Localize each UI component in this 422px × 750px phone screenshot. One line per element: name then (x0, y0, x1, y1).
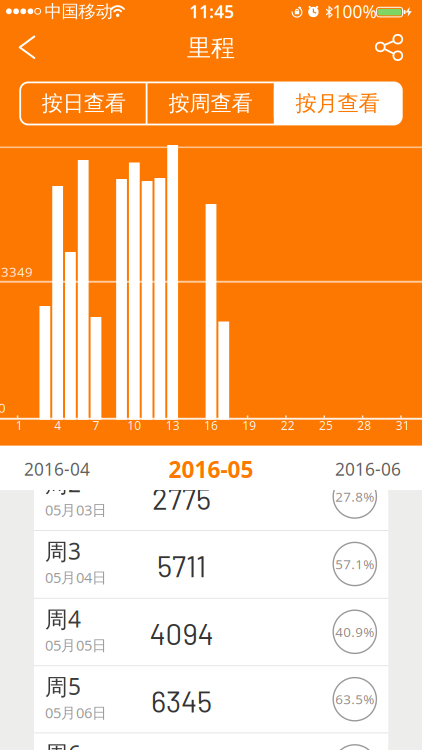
staticText: 中国移动 (44, 1, 112, 22)
staticText: 6345 (151, 683, 212, 718)
staticText: 05月04日 (45, 568, 107, 587)
staticText: 57.1% (335, 555, 374, 573)
button[interactable] (12, 31, 42, 65)
staticText: 11:45 (189, 0, 234, 23)
staticText: 16 (204, 417, 218, 433)
staticText: 周2 (45, 468, 81, 498)
staticText: 里程 (187, 33, 235, 63)
button[interactable]: 2016-06 (317, 448, 418, 490)
staticText: 63.5% (335, 690, 374, 708)
staticText: 05月05日 (45, 635, 107, 655)
staticText: 31 (396, 417, 410, 433)
staticText: 28 (357, 417, 371, 433)
staticText: 100% (332, 0, 376, 23)
staticText: 05月06日 (45, 703, 107, 722)
staticText: 19 (242, 417, 256, 433)
staticText: 4094 (149, 616, 213, 651)
staticText: 周3 (45, 536, 81, 566)
button[interactable]: 周6 (34, 732, 388, 750)
staticText: 3349 (1, 263, 33, 280)
staticText: 2016-04 (24, 458, 90, 481)
staticText: 按月查看 (295, 90, 379, 116)
staticText: 27.8% (335, 488, 374, 505)
staticText: 2016-05 (168, 454, 253, 484)
staticText: 40.9% (335, 623, 374, 641)
staticText: 按日查看 (42, 90, 126, 116)
staticText: 13 (166, 417, 180, 433)
staticText: 按周查看 (169, 90, 253, 116)
staticText: 22 (281, 417, 295, 433)
staticText: 25 (319, 417, 333, 433)
staticText: 0 (0, 399, 6, 416)
button[interactable]: 周5 (34, 665, 388, 733)
staticText: 2016-06 (335, 458, 401, 481)
button[interactable]: 周2 (34, 462, 388, 530)
button[interactable] (370, 30, 408, 64)
staticText: 2775 (152, 480, 211, 516)
button[interactable]: 周3 (34, 530, 388, 597)
staticText: 周5 (45, 671, 81, 701)
button[interactable]: 2016-05 (151, 448, 271, 490)
staticText: 周4 (45, 604, 81, 634)
staticText: 周6 (45, 738, 81, 750)
staticText: 7 (92, 417, 99, 433)
button[interactable]: 按日查看 (20, 82, 147, 124)
staticText: 1 (16, 417, 23, 433)
staticText: 4 (54, 417, 61, 433)
staticText: 10 (127, 417, 141, 433)
button[interactable]: 2016-04 (6, 448, 107, 490)
staticText: 05月03日 (45, 500, 107, 520)
button[interactable]: 周4 (34, 598, 388, 665)
button[interactable]: 按周查看 (147, 82, 274, 124)
staticText: 5711 (157, 548, 206, 583)
button[interactable]: 按月查看 (274, 82, 401, 124)
